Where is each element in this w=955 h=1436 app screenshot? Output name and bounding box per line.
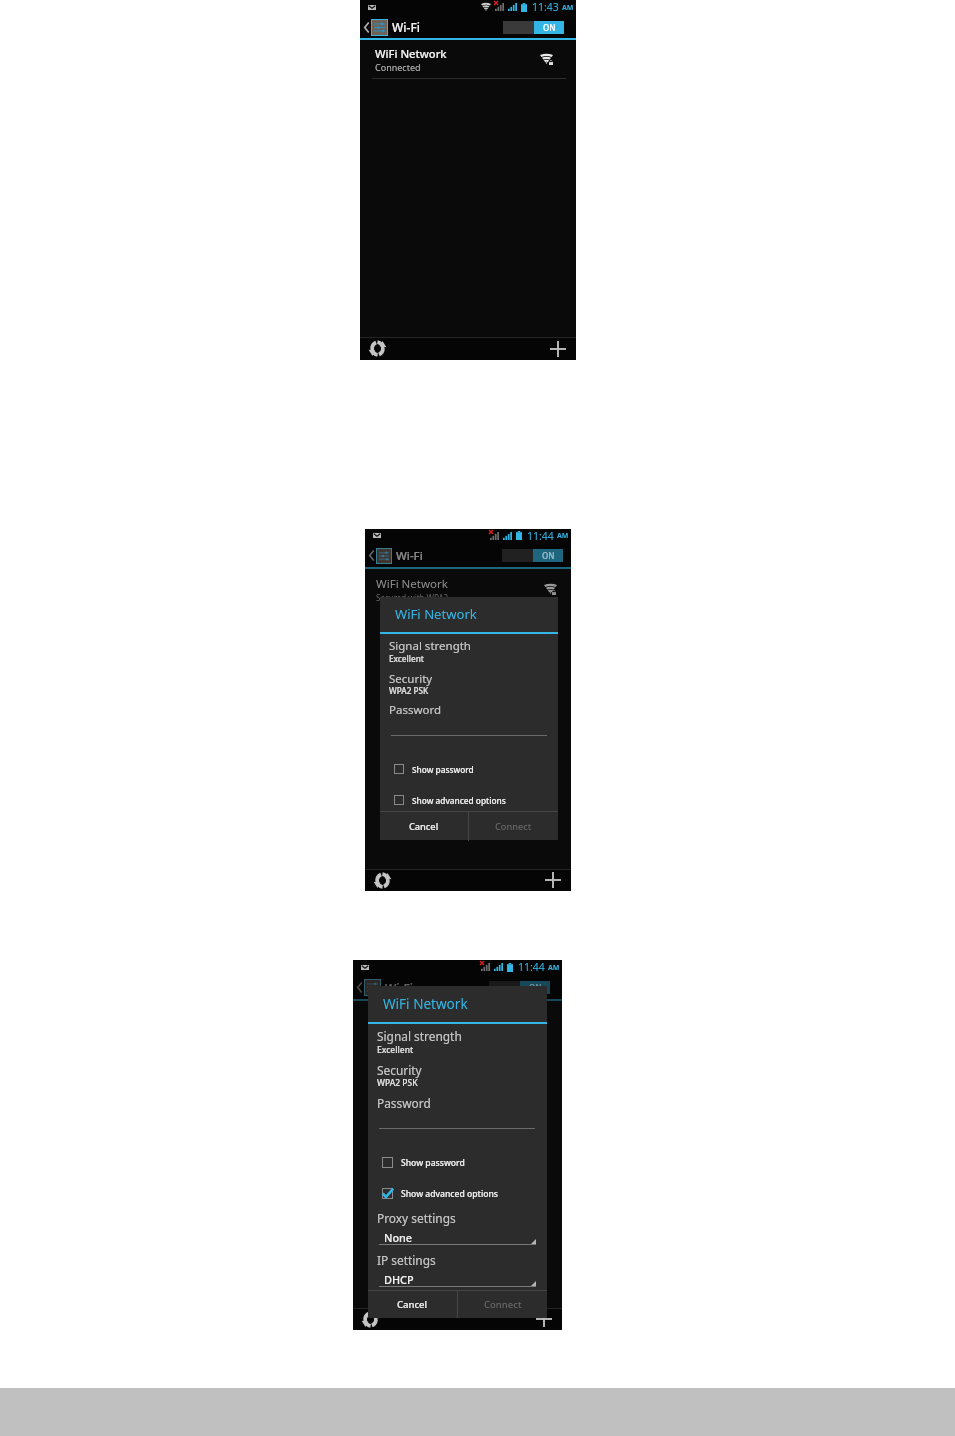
staticText: Wi-Fi [396, 548, 423, 564]
staticText: ON [529, 982, 542, 993]
staticText: Connect [484, 1298, 522, 1311]
other: Back [357, 982, 362, 993]
staticText: IP settings [377, 1252, 436, 1268]
other: Back [369, 550, 374, 561]
staticText: Secured with WPA2 [376, 592, 449, 603]
staticText: DHCP [384, 1272, 414, 1287]
staticText: Show password [412, 764, 474, 775]
button[interactable]: None [379, 1230, 536, 1245]
button[interactable]: Wi-Fi on/off [489, 981, 550, 994]
staticText: Cancel [409, 820, 439, 833]
button[interactable]: Add network [545, 872, 561, 888]
staticText: 11:43 [532, 0, 559, 14]
staticText: Signal strength [377, 1028, 462, 1044]
button[interactable]: Show advanced options [380, 791, 558, 809]
button[interactable]: Cancel [368, 1291, 457, 1318]
button[interactable]: Show advanced options [368, 1184, 547, 1203]
staticText: Cancel [397, 1298, 428, 1311]
staticText: WiFi Network [375, 46, 447, 61]
staticText: AM [557, 531, 569, 541]
button[interactable]: Add network [536, 1311, 552, 1327]
staticText: Signal strength [389, 638, 471, 654]
staticText: WiFi Network [395, 605, 477, 623]
staticText: 11:44 [527, 529, 554, 542]
button[interactable]: Show password [368, 1153, 547, 1172]
button[interactable]: Cancel [380, 812, 468, 841]
staticText: Password [389, 702, 442, 718]
button[interactable]: Scan [374, 872, 391, 889]
staticText: Connect [495, 820, 532, 833]
staticText: Show password [401, 1157, 465, 1169]
staticText: WPA2 PSK [377, 1077, 418, 1089]
staticText: Excellent [389, 653, 424, 664]
button[interactable]: Add network [550, 341, 566, 357]
button[interactable]: Scan [362, 1311, 379, 1328]
staticText: Show advanced options [401, 1188, 498, 1200]
staticText: 11:44 [518, 960, 545, 974]
button[interactable]: Scan [369, 340, 386, 357]
staticText: ON [543, 22, 556, 33]
staticText: Wi-Fi [392, 19, 420, 35]
button[interactable]: Show password [380, 760, 558, 778]
staticText: WPA2 PSK [389, 685, 429, 696]
staticText: Security [389, 671, 433, 687]
button[interactable]: Wi-Fi on/off [503, 21, 564, 34]
staticText: AM [562, 3, 574, 13]
staticText: AM [548, 963, 560, 973]
other: Back [364, 22, 369, 33]
button[interactable]: Wi-Fi on/off [502, 549, 563, 562]
staticText: WiFi Network [383, 995, 468, 1013]
staticText: ON [542, 550, 555, 561]
staticText: Proxy settings [377, 1210, 456, 1226]
staticText: WiFi Network [376, 576, 448, 592]
staticText: Show advanced options [412, 795, 506, 806]
staticText: Excellent [377, 1044, 414, 1056]
staticText: Connected [375, 61, 421, 73]
staticText: Wi-Fi [385, 980, 413, 996]
staticText: None [384, 1230, 413, 1245]
button[interactable]: Connect [458, 1291, 547, 1318]
button[interactable]: DHCP [379, 1272, 536, 1287]
button[interactable]: WiFi Network [360, 40, 576, 78]
staticText: Password [377, 1095, 431, 1111]
button[interactable]: Connect [469, 812, 558, 841]
staticText: Security [377, 1062, 422, 1078]
